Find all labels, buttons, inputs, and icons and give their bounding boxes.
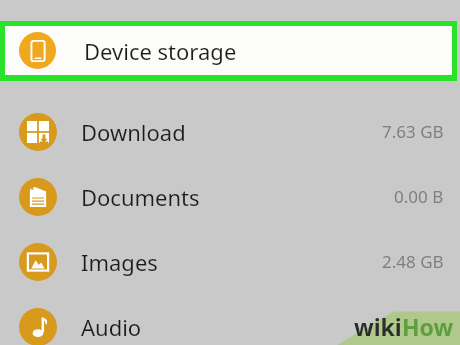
- staticText: 2.48 GB: [382, 250, 444, 273]
- staticText: 0.00 B: [394, 185, 444, 208]
- staticText: 7.63 GB: [382, 120, 444, 143]
- staticText: Download: [81, 117, 186, 147]
- staticText: How: [402, 311, 454, 342]
- button[interactable]: Images: [0, 229, 460, 294]
- staticText: Documents: [81, 182, 200, 212]
- staticText: Audio: [81, 312, 142, 342]
- staticText: 3.28 MB: [379, 315, 444, 338]
- staticText: Images: [81, 247, 158, 277]
- button[interactable]: Documents: [0, 164, 460, 229]
- button[interactable]: Device storage: [0, 21, 457, 81]
- button[interactable]: Audio: [0, 294, 460, 345]
- staticText: Device storage: [84, 36, 237, 66]
- button[interactable]: Download: [0, 99, 460, 164]
- staticText: wiki: [354, 311, 402, 342]
